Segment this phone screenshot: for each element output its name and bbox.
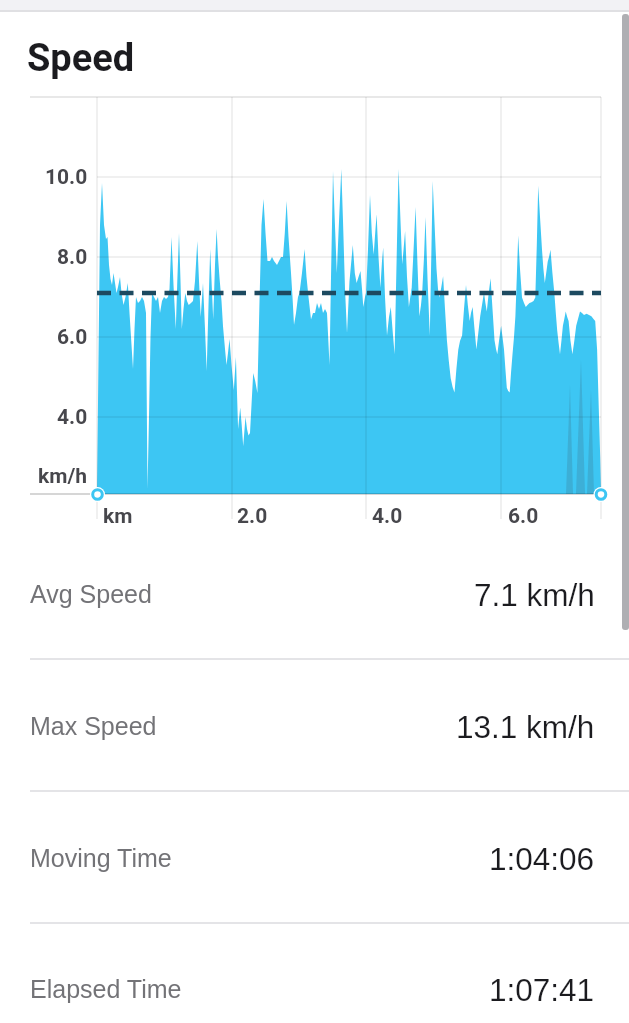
button[interactable]: Moving Time bbox=[0, 825, 629, 891]
staticText: Elapsed Time bbox=[30, 975, 182, 1003]
staticText: 4.0 bbox=[57, 405, 88, 430]
button[interactable]: Max Speed bbox=[0, 693, 629, 759]
staticText: Avg Speed bbox=[30, 580, 152, 608]
staticText: 2.0 bbox=[237, 504, 268, 529]
staticText: Moving Time bbox=[30, 844, 172, 872]
button[interactable]: Elapsed Time bbox=[0, 956, 629, 1022]
staticText: 13.1 km/h bbox=[456, 709, 595, 744]
staticText: 6.0 bbox=[508, 504, 539, 529]
button[interactable]: Avg Speed bbox=[0, 561, 629, 627]
staticText: 6.0 bbox=[57, 325, 88, 350]
staticText: km/h bbox=[38, 464, 88, 489]
staticText: 1:07:41 bbox=[489, 972, 595, 1007]
staticText: km bbox=[103, 504, 133, 529]
staticText: 7.1 km/h bbox=[474, 577, 595, 612]
staticText: 4.0 bbox=[372, 504, 403, 529]
staticText: Max Speed bbox=[30, 712, 157, 740]
staticText: 10.0 bbox=[45, 165, 88, 190]
staticText: 8.0 bbox=[57, 245, 88, 270]
staticText: 1:04:06 bbox=[489, 841, 595, 876]
staticText: Speed bbox=[27, 36, 135, 81]
